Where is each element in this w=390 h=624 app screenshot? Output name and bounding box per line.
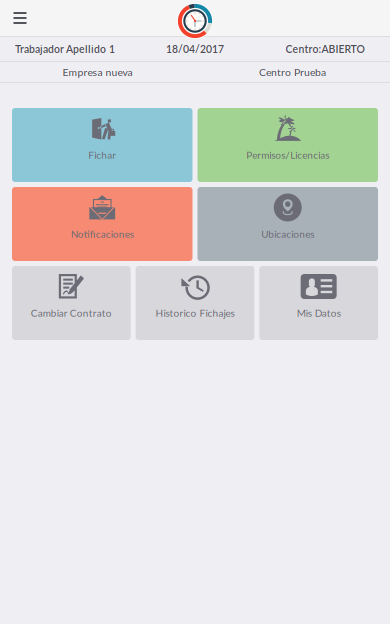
- staticText: Permisos/Licencias: [246, 149, 329, 161]
- staticText: Historico Fichajes: [155, 307, 234, 319]
- staticText: Mis Datos: [297, 307, 341, 319]
- button[interactable]: Permisos/Licencias: [197, 108, 378, 182]
- button[interactable]: Notificaciones: [12, 187, 192, 261]
- staticText: Ubicaciones: [261, 228, 314, 240]
- staticText: Centro Prueba: [259, 66, 326, 78]
- staticText: Centro:ABIERTO: [285, 43, 364, 55]
- staticText: 18/04/2017: [166, 43, 224, 55]
- button[interactable]: Historico Fichajes: [136, 266, 254, 340]
- staticText: Fichar: [88, 149, 116, 161]
- button[interactable]: Fichar: [12, 108, 192, 182]
- button[interactable]: Ubicaciones: [197, 187, 378, 261]
- button[interactable]: Menu: [0, 0, 40, 36]
- button[interactable]: Cambiar Contrato: [12, 266, 131, 340]
- staticText: Empresa nueva: [62, 66, 132, 78]
- staticText: Cambiar Contrato: [31, 307, 112, 319]
- staticText: Trabajador Apellido 1: [15, 43, 115, 55]
- button[interactable]: Mis Datos: [259, 266, 378, 340]
- staticText: Notificaciones: [71, 228, 134, 240]
